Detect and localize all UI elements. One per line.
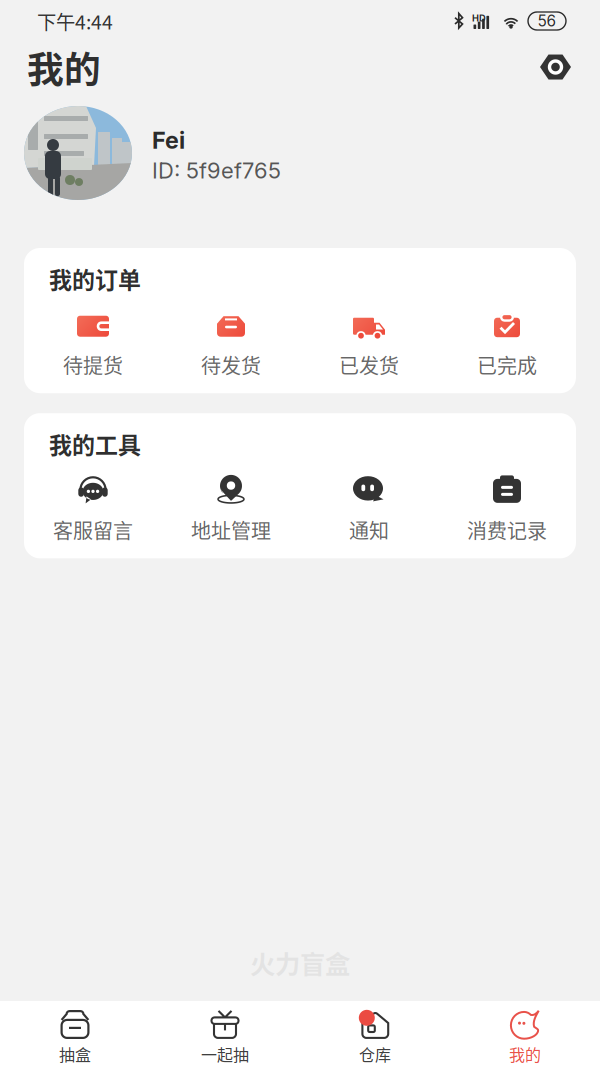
button[interactable]: Fei: [0, 106, 600, 200]
staticText: 下午4:44: [37, 7, 113, 35]
staticText: ID: 5f9ef765: [152, 157, 281, 184]
staticText: 通知: [349, 515, 389, 544]
button[interactable]: 已完成: [438, 309, 576, 379]
staticText: 一起抽: [201, 1042, 249, 1066]
staticText: 火力盲盒: [250, 944, 350, 981]
button[interactable]: 消费记录: [438, 474, 576, 544]
button[interactable]: 客服留言: [24, 474, 162, 544]
staticText: 抽盒: [59, 1042, 91, 1066]
staticText: HD: [472, 12, 486, 24]
staticText: 已发货: [339, 350, 399, 379]
staticText: 我的: [27, 40, 101, 94]
staticText: 我的: [509, 1042, 541, 1066]
button[interactable]: 通知: [300, 474, 438, 544]
staticText: 待提货: [63, 350, 123, 379]
staticText: 消费记录: [467, 515, 547, 544]
staticText: 我的工具: [49, 427, 141, 460]
staticText: 地址管理: [191, 515, 271, 544]
button[interactable]: Settings: [538, 53, 573, 81]
button[interactable]: 抽盒: [0, 1010, 150, 1066]
staticText: 56: [537, 12, 556, 30]
button[interactable]: 我的: [450, 1010, 600, 1066]
button[interactable]: 已发货: [300, 309, 438, 379]
staticText: 待发货: [201, 350, 261, 379]
button[interactable]: 待提货: [24, 309, 162, 379]
staticText: 客服留言: [53, 515, 133, 544]
staticText: 仓库: [359, 1042, 391, 1066]
staticText: 已完成: [477, 350, 537, 379]
button[interactable]: 地址管理: [162, 474, 300, 544]
button[interactable]: 仓库: [300, 1010, 450, 1066]
button[interactable]: 待发货: [162, 309, 300, 379]
staticText: Fei: [152, 126, 185, 154]
button[interactable]: 一起抽: [150, 1010, 300, 1066]
staticText: 我的订单: [49, 262, 141, 295]
